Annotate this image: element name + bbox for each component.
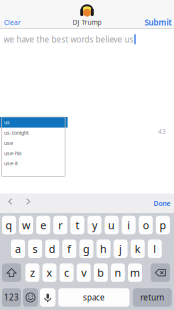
staticText: l xyxy=(153,242,156,256)
staticText: x xyxy=(46,266,52,280)
staticText: e xyxy=(40,218,46,232)
button[interactable]: Clear xyxy=(4,12,30,32)
button[interactable]: use xyxy=(0,138,68,148)
button[interactable]: Submit xyxy=(143,12,171,32)
staticText: us-tonight xyxy=(4,129,29,136)
staticText: g xyxy=(83,242,90,256)
button[interactable]: k xyxy=(131,239,145,258)
button[interactable]: b xyxy=(94,263,108,282)
staticText: q xyxy=(5,218,12,232)
staticText: v xyxy=(81,266,86,280)
staticText: z xyxy=(30,266,35,280)
staticText: c xyxy=(64,266,69,280)
staticText: j xyxy=(119,242,122,256)
staticText: w xyxy=(22,218,30,232)
button[interactable]: Previous field xyxy=(3,194,17,208)
staticText: d xyxy=(49,242,56,256)
button[interactable]: o xyxy=(139,216,153,234)
button[interactable]: l xyxy=(148,239,162,258)
staticText: p xyxy=(159,218,166,232)
staticText: Clear xyxy=(4,18,21,27)
button[interactable]: m xyxy=(128,263,142,282)
staticText: return xyxy=(140,292,164,303)
button[interactable]: z xyxy=(25,263,39,282)
button[interactable]: Emoji xyxy=(23,288,38,307)
staticText: o xyxy=(143,218,149,232)
button[interactable]: us xyxy=(0,117,68,128)
button[interactable]: r xyxy=(53,216,67,234)
button[interactable]: h xyxy=(96,239,110,258)
staticText: t xyxy=(75,218,79,232)
button[interactable]: 123 xyxy=(2,288,21,307)
button[interactable]: x xyxy=(42,263,56,282)
button[interactable]: Delete xyxy=(151,263,170,282)
button[interactable]: use-it xyxy=(0,158,68,168)
staticText: space xyxy=(83,292,105,303)
staticText: u xyxy=(108,218,115,232)
staticText: use xyxy=(4,139,13,146)
staticText: us xyxy=(4,119,10,126)
button[interactable]: w xyxy=(19,216,33,234)
button[interactable]: return xyxy=(133,288,172,307)
staticText: use-it xyxy=(4,160,18,167)
staticText: use-his xyxy=(4,150,22,157)
staticText: s xyxy=(33,242,38,256)
button[interactable]: use-his xyxy=(0,148,68,158)
button[interactable]: y xyxy=(87,216,101,234)
button[interactable]: s xyxy=(28,239,42,258)
button[interactable]: v xyxy=(77,263,91,282)
staticText: m xyxy=(130,266,140,280)
button[interactable]: space xyxy=(58,288,129,307)
button[interactable]: j xyxy=(114,239,128,258)
staticText: n xyxy=(114,266,121,280)
staticText: f xyxy=(67,242,71,256)
button[interactable]: n xyxy=(111,263,125,282)
button[interactable]: f xyxy=(62,239,76,258)
staticText: h xyxy=(100,242,107,256)
button[interactable]: i xyxy=(122,216,136,234)
button[interactable]: c xyxy=(60,263,74,282)
button[interactable]: t xyxy=(70,216,84,234)
button[interactable]: u xyxy=(105,216,119,234)
button[interactable]: us-tonight xyxy=(0,128,68,138)
staticText: r xyxy=(58,218,62,232)
button[interactable]: e xyxy=(36,216,50,234)
button[interactable]: a xyxy=(11,239,25,258)
staticText: b xyxy=(97,266,104,280)
staticText: y xyxy=(92,218,97,232)
staticText: 43 xyxy=(158,127,166,136)
button[interactable]: Dictation xyxy=(40,288,55,307)
staticText: we have the best words believe us xyxy=(4,34,134,45)
staticText: i xyxy=(127,218,130,232)
button[interactable]: p xyxy=(156,216,170,234)
button[interactable]: q xyxy=(2,216,16,234)
staticText: a xyxy=(15,242,21,256)
staticText: Submit xyxy=(144,17,171,28)
button[interactable]: Done xyxy=(146,195,170,211)
staticText: k xyxy=(135,242,141,256)
button[interactable]: Shift xyxy=(2,263,21,282)
button[interactable]: g xyxy=(79,239,93,258)
button[interactable]: Next field xyxy=(21,194,35,208)
staticText: Done xyxy=(153,199,170,208)
staticText: DJ Trump xyxy=(72,18,101,27)
button[interactable]: d xyxy=(45,239,59,258)
staticText: 123 xyxy=(4,292,19,303)
